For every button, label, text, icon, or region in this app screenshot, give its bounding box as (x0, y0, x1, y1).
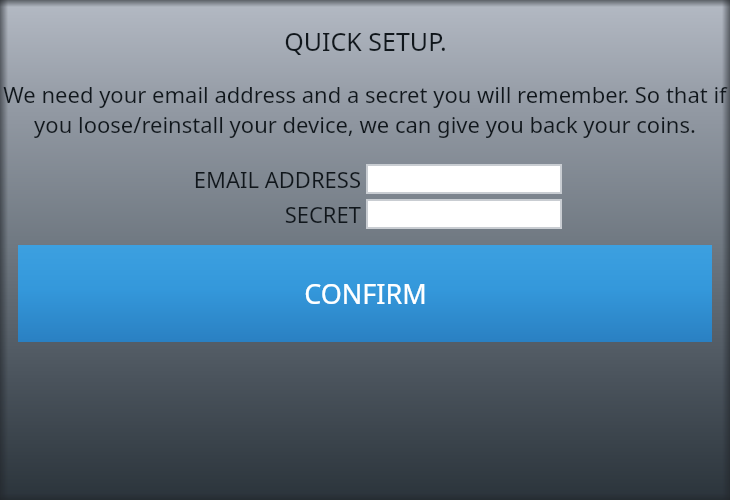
staticText: CONFIRM (304, 275, 427, 312)
staticText: EMAIL ADDRESS (193, 164, 361, 194)
staticText: SECRET (284, 199, 361, 229)
staticText: QUICK SETUP. (284, 24, 447, 58)
staticText: We need your email address and a secret … (2, 79, 728, 139)
button[interactable]: CONFIRM (18, 245, 712, 342)
